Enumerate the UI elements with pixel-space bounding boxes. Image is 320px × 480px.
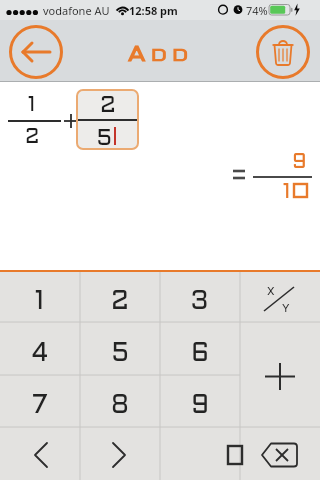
staticText: 2: [111, 290, 129, 314]
button[interactable]: 7: [0, 380, 80, 432]
staticText: 1: [283, 183, 291, 203]
button[interactable]: ADD: [100, 25, 220, 86]
button[interactable]: 6: [160, 327, 240, 380]
staticText: vodafone AU: [43, 3, 110, 18]
button[interactable]: [80, 427, 160, 480]
button[interactable]: [257, 26, 309, 78]
staticText: 7: [32, 394, 48, 418]
staticText: 5: [112, 342, 129, 366]
button[interactable]: 1: [0, 277, 80, 327]
button[interactable]: [160, 427, 240, 480]
staticText: X: [267, 287, 275, 297]
button[interactable]: 4: [0, 327, 80, 380]
button[interactable]: 2: [80, 277, 160, 327]
button[interactable]: [10, 26, 62, 78]
staticText: 5: [97, 128, 112, 149]
button[interactable]: [77, 90, 138, 149]
staticText: 1: [35, 290, 45, 314]
button[interactable]: [0, 427, 80, 480]
staticText: 1: [28, 96, 36, 116]
staticText: 2: [25, 128, 40, 148]
staticText: ADD: [127, 46, 194, 66]
staticText: 4: [32, 342, 48, 366]
staticText: 74%: [246, 3, 268, 18]
button[interactable]: [240, 272, 320, 322]
staticText: 9: [292, 153, 307, 173]
button[interactable]: [240, 427, 320, 480]
button[interactable]: 9: [160, 380, 240, 432]
button[interactable]: 8: [80, 380, 160, 432]
staticText: Y: [282, 304, 290, 314]
button[interactable]: 3: [160, 277, 240, 327]
button[interactable]: 5: [80, 327, 160, 380]
staticText: 8: [111, 394, 129, 418]
staticText: 12:58 pm: [129, 3, 178, 18]
button[interactable]: [240, 322, 320, 427]
staticText: 3: [191, 290, 209, 314]
staticText: 2: [100, 95, 116, 116]
staticText: 6: [191, 342, 210, 366]
staticText: 9: [191, 394, 210, 418]
